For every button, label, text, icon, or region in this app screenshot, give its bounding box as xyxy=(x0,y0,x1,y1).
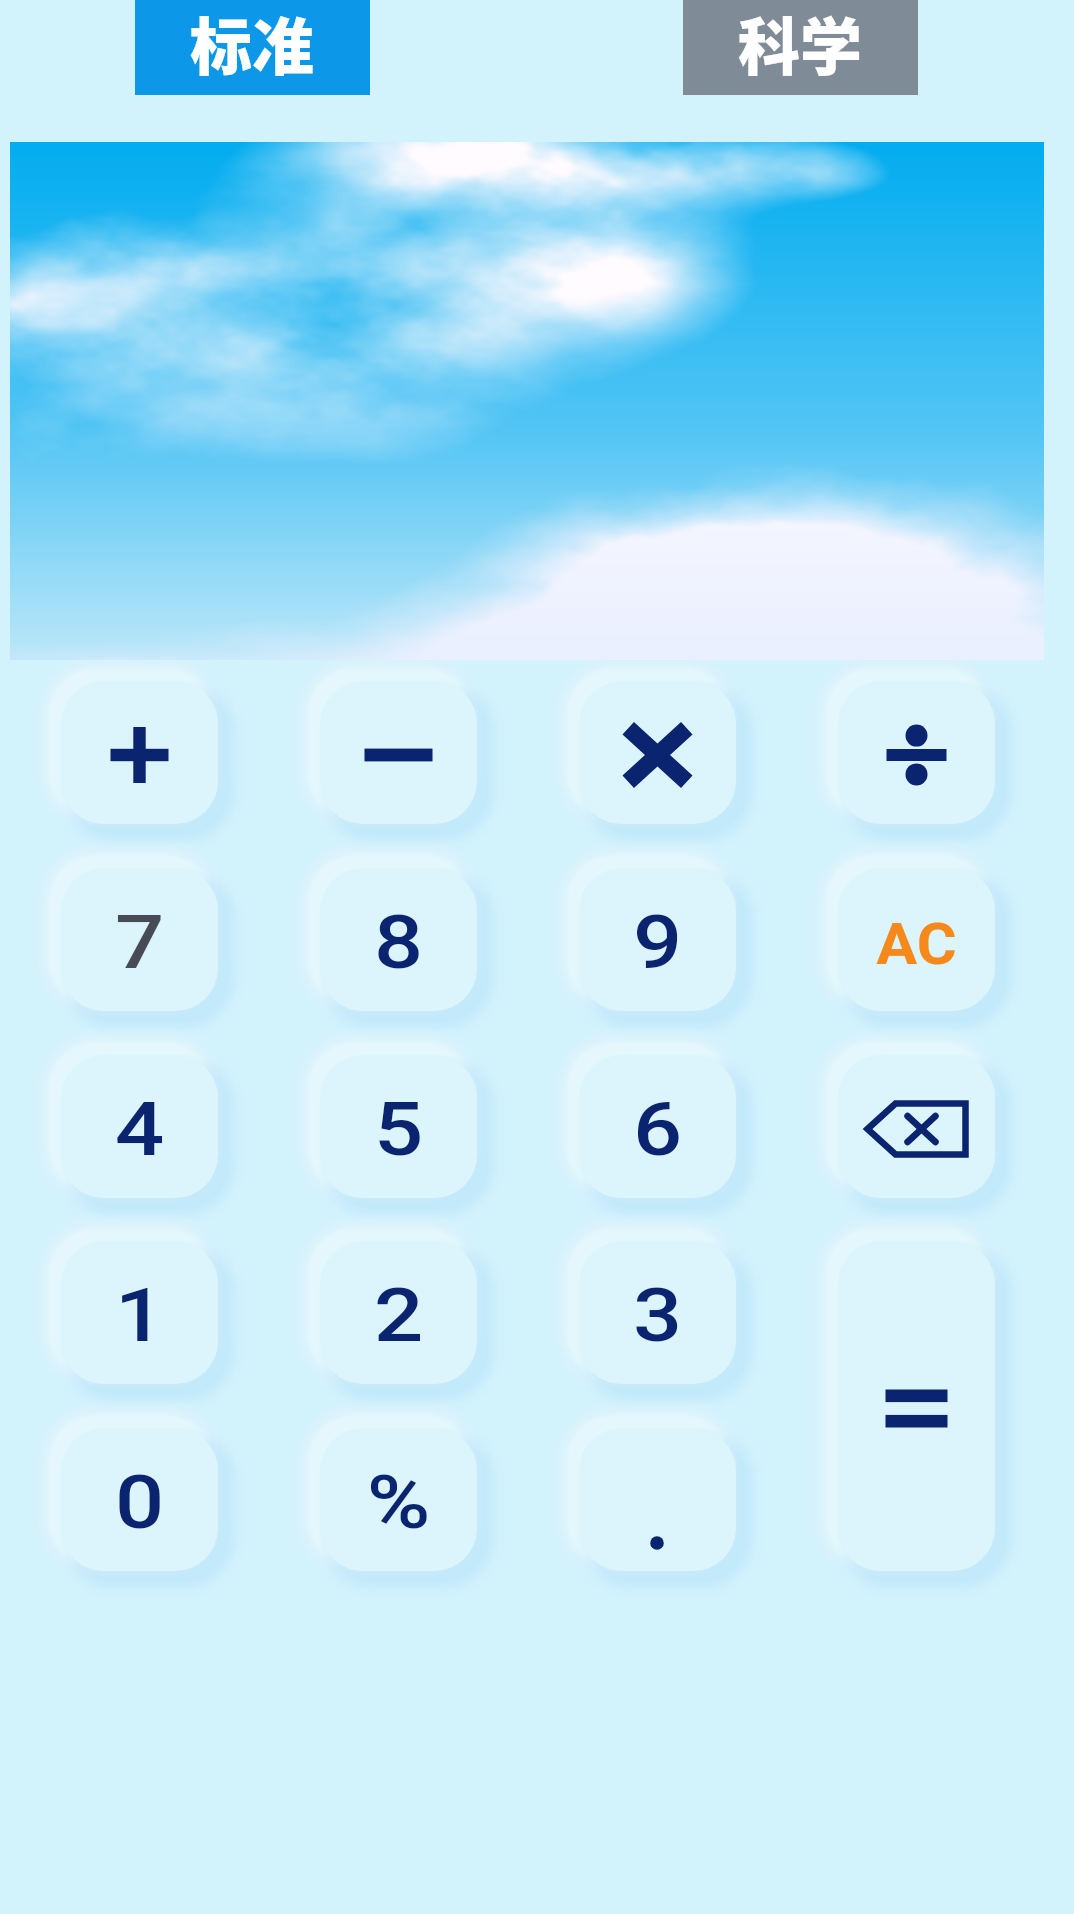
staticText: % xyxy=(366,1459,431,1546)
staticText: 2 xyxy=(373,1272,424,1359)
button[interactable]: 8 xyxy=(320,868,477,1011)
staticText: 1 xyxy=(114,1272,165,1359)
button[interactable]: 2 xyxy=(320,1241,477,1384)
button[interactable]: 0 xyxy=(61,1428,218,1571)
button[interactable]: equals xyxy=(838,1241,995,1571)
staticText: 0 xyxy=(114,1459,165,1546)
staticText: 4 xyxy=(114,1086,165,1173)
staticText: 6 xyxy=(632,1086,683,1173)
staticText: 3 xyxy=(632,1272,683,1359)
button[interactable]: minus xyxy=(320,681,477,824)
staticText: 7 xyxy=(114,899,165,986)
staticText: 标准 xyxy=(190,0,315,88)
button[interactable]: 5 xyxy=(320,1055,477,1198)
button[interactable]: divide xyxy=(838,681,995,824)
staticText: 8 xyxy=(373,899,424,986)
button[interactable]: 6 xyxy=(579,1055,736,1198)
staticText: 9 xyxy=(632,899,683,986)
staticText: 5 xyxy=(373,1086,424,1173)
button[interactable]: 3 xyxy=(579,1241,736,1384)
button[interactable]: 标准 xyxy=(135,0,370,95)
button[interactable]: 科学 xyxy=(683,0,918,95)
staticText: 科学 xyxy=(738,0,863,88)
button[interactable]: backspace xyxy=(838,1055,995,1198)
button[interactable]: times xyxy=(579,681,736,824)
staticText: AC xyxy=(876,910,957,978)
button[interactable]: plus xyxy=(61,681,218,824)
button[interactable]: % xyxy=(320,1428,477,1571)
button[interactable]: 4 xyxy=(61,1055,218,1198)
button[interactable]: 9 xyxy=(579,868,736,1011)
button[interactable]: AC xyxy=(838,868,995,1011)
button[interactable]: 7 xyxy=(61,868,218,1011)
button[interactable]: 1 xyxy=(61,1241,218,1384)
button[interactable]: dot xyxy=(579,1428,736,1571)
